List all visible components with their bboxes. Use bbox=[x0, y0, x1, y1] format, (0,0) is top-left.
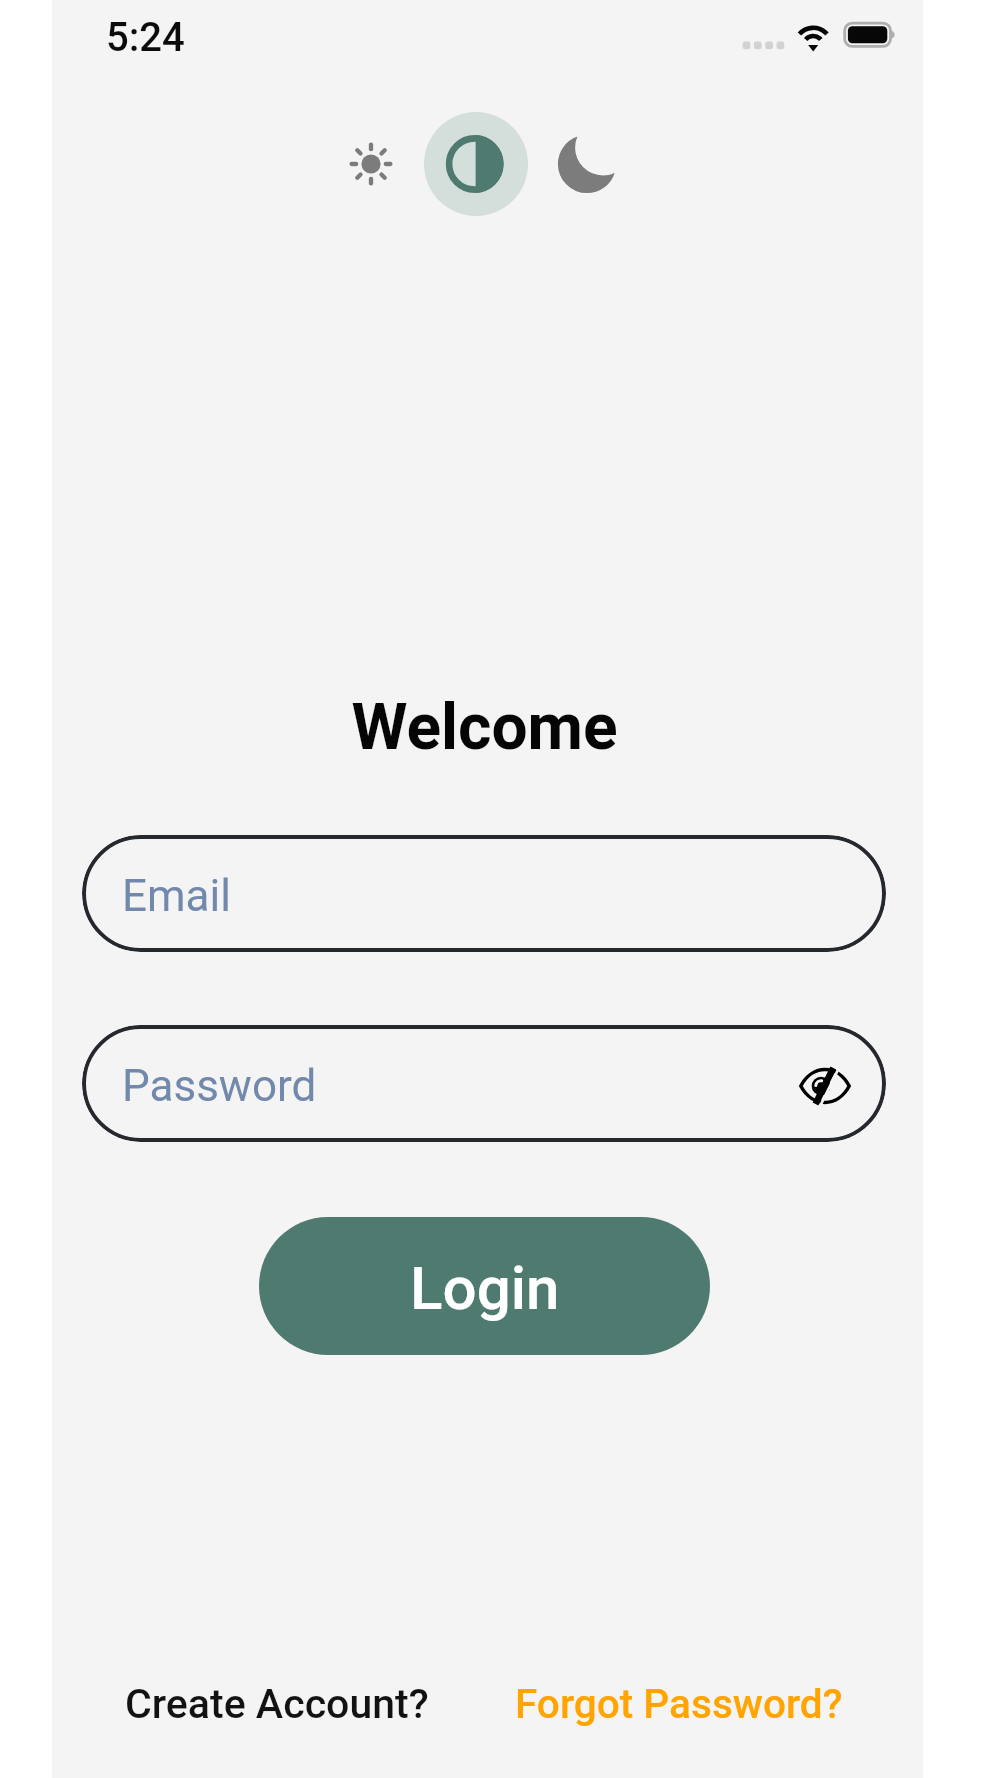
button[interactable]: Light theme bbox=[319, 112, 423, 216]
button[interactable]: Create Account? bbox=[109, 1666, 445, 1742]
staticText: Welcome bbox=[49, 690, 920, 765]
button[interactable]: Show password bbox=[786, 1047, 864, 1125]
staticText: Login bbox=[410, 1253, 560, 1323]
button[interactable]: Login bbox=[259, 1217, 710, 1355]
button[interactable]: Email bbox=[82, 835, 886, 952]
button[interactable]: Password bbox=[82, 1025, 886, 1142]
staticText: Create Account? bbox=[125, 1680, 429, 1728]
staticText: 5:24 bbox=[106, 14, 185, 61]
staticText: Email bbox=[122, 870, 231, 922]
button[interactable]: Forgot Password? bbox=[499, 1666, 859, 1741]
staticText: Password bbox=[122, 1060, 317, 1112]
button[interactable]: System theme bbox=[424, 112, 528, 216]
staticText: Forgot Password? bbox=[515, 1680, 843, 1727]
button[interactable]: Dark theme bbox=[535, 112, 639, 216]
